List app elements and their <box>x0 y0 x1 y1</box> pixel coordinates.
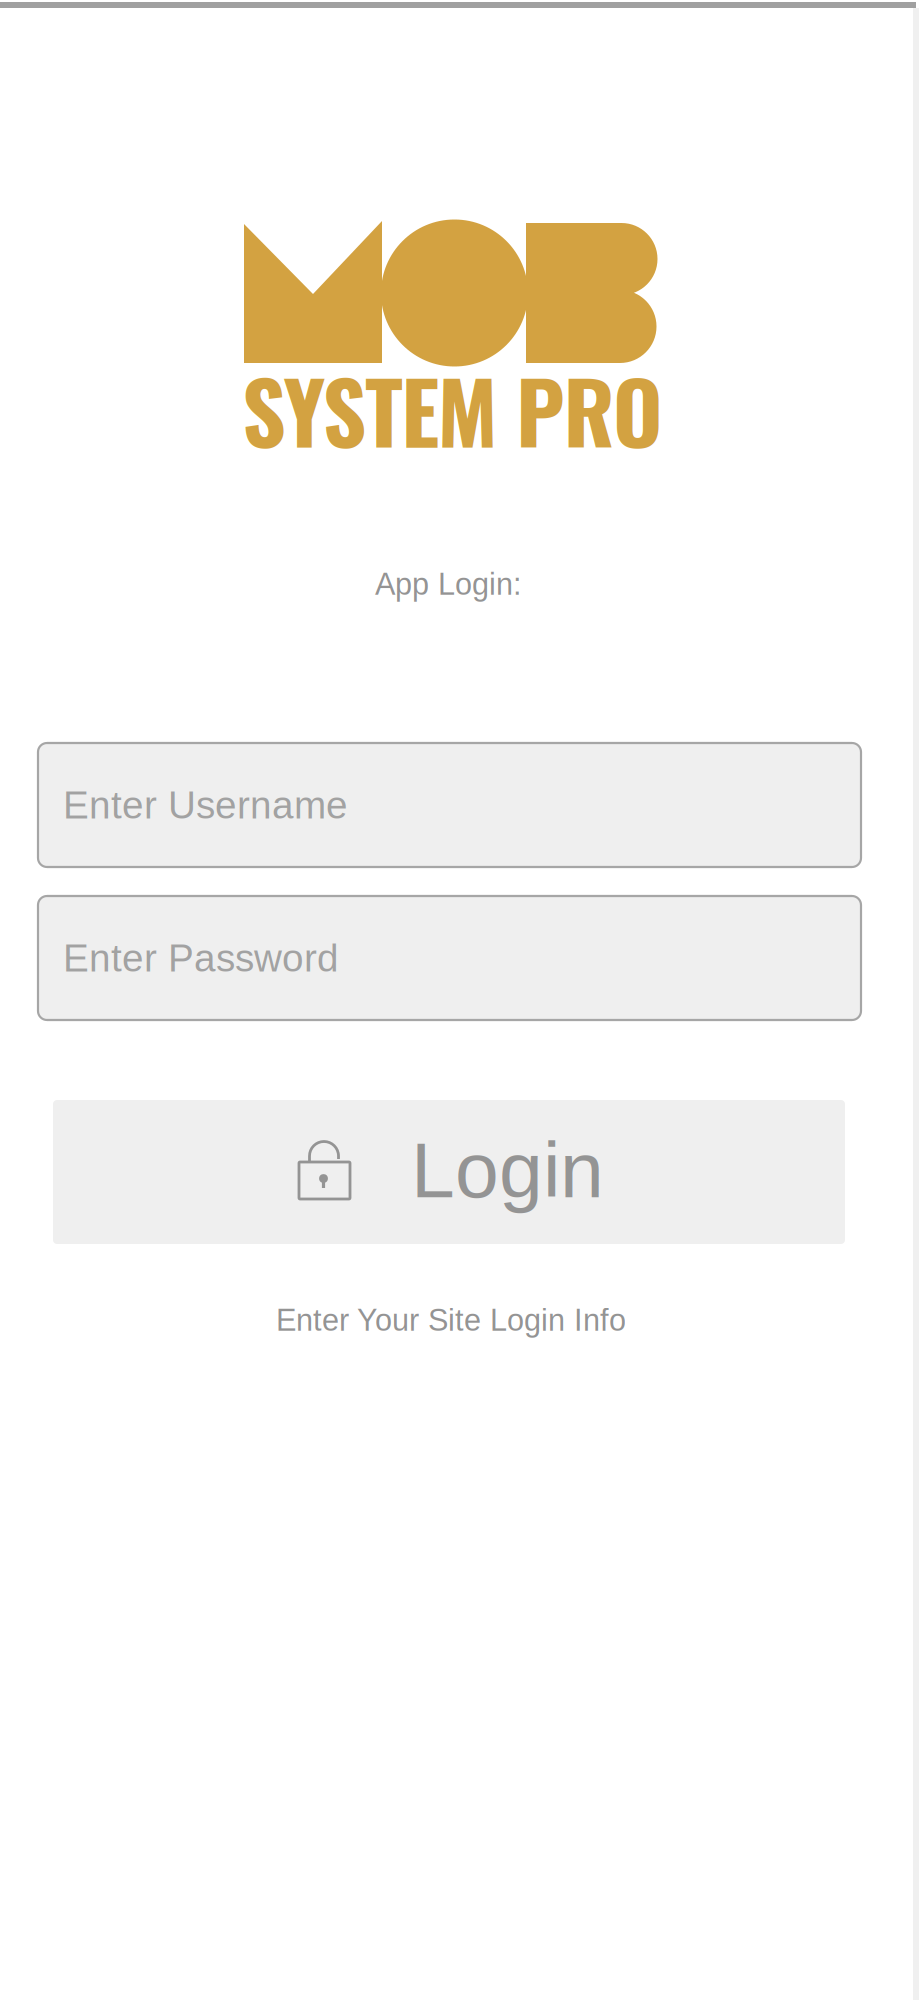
staticText: SYSTEM PRO <box>242 346 663 472</box>
staticText: Enter Your Site Login Info <box>276 1303 626 1337</box>
button[interactable]: Login <box>53 1100 845 1244</box>
staticText: Login <box>411 1126 604 1214</box>
staticText: Enter Username <box>63 783 348 827</box>
button[interactable]: Enter Username <box>38 743 861 867</box>
button[interactable]: Enter Password <box>38 896 861 1020</box>
staticText: Enter Password <box>63 936 339 980</box>
staticText: App Login: <box>375 567 522 601</box>
